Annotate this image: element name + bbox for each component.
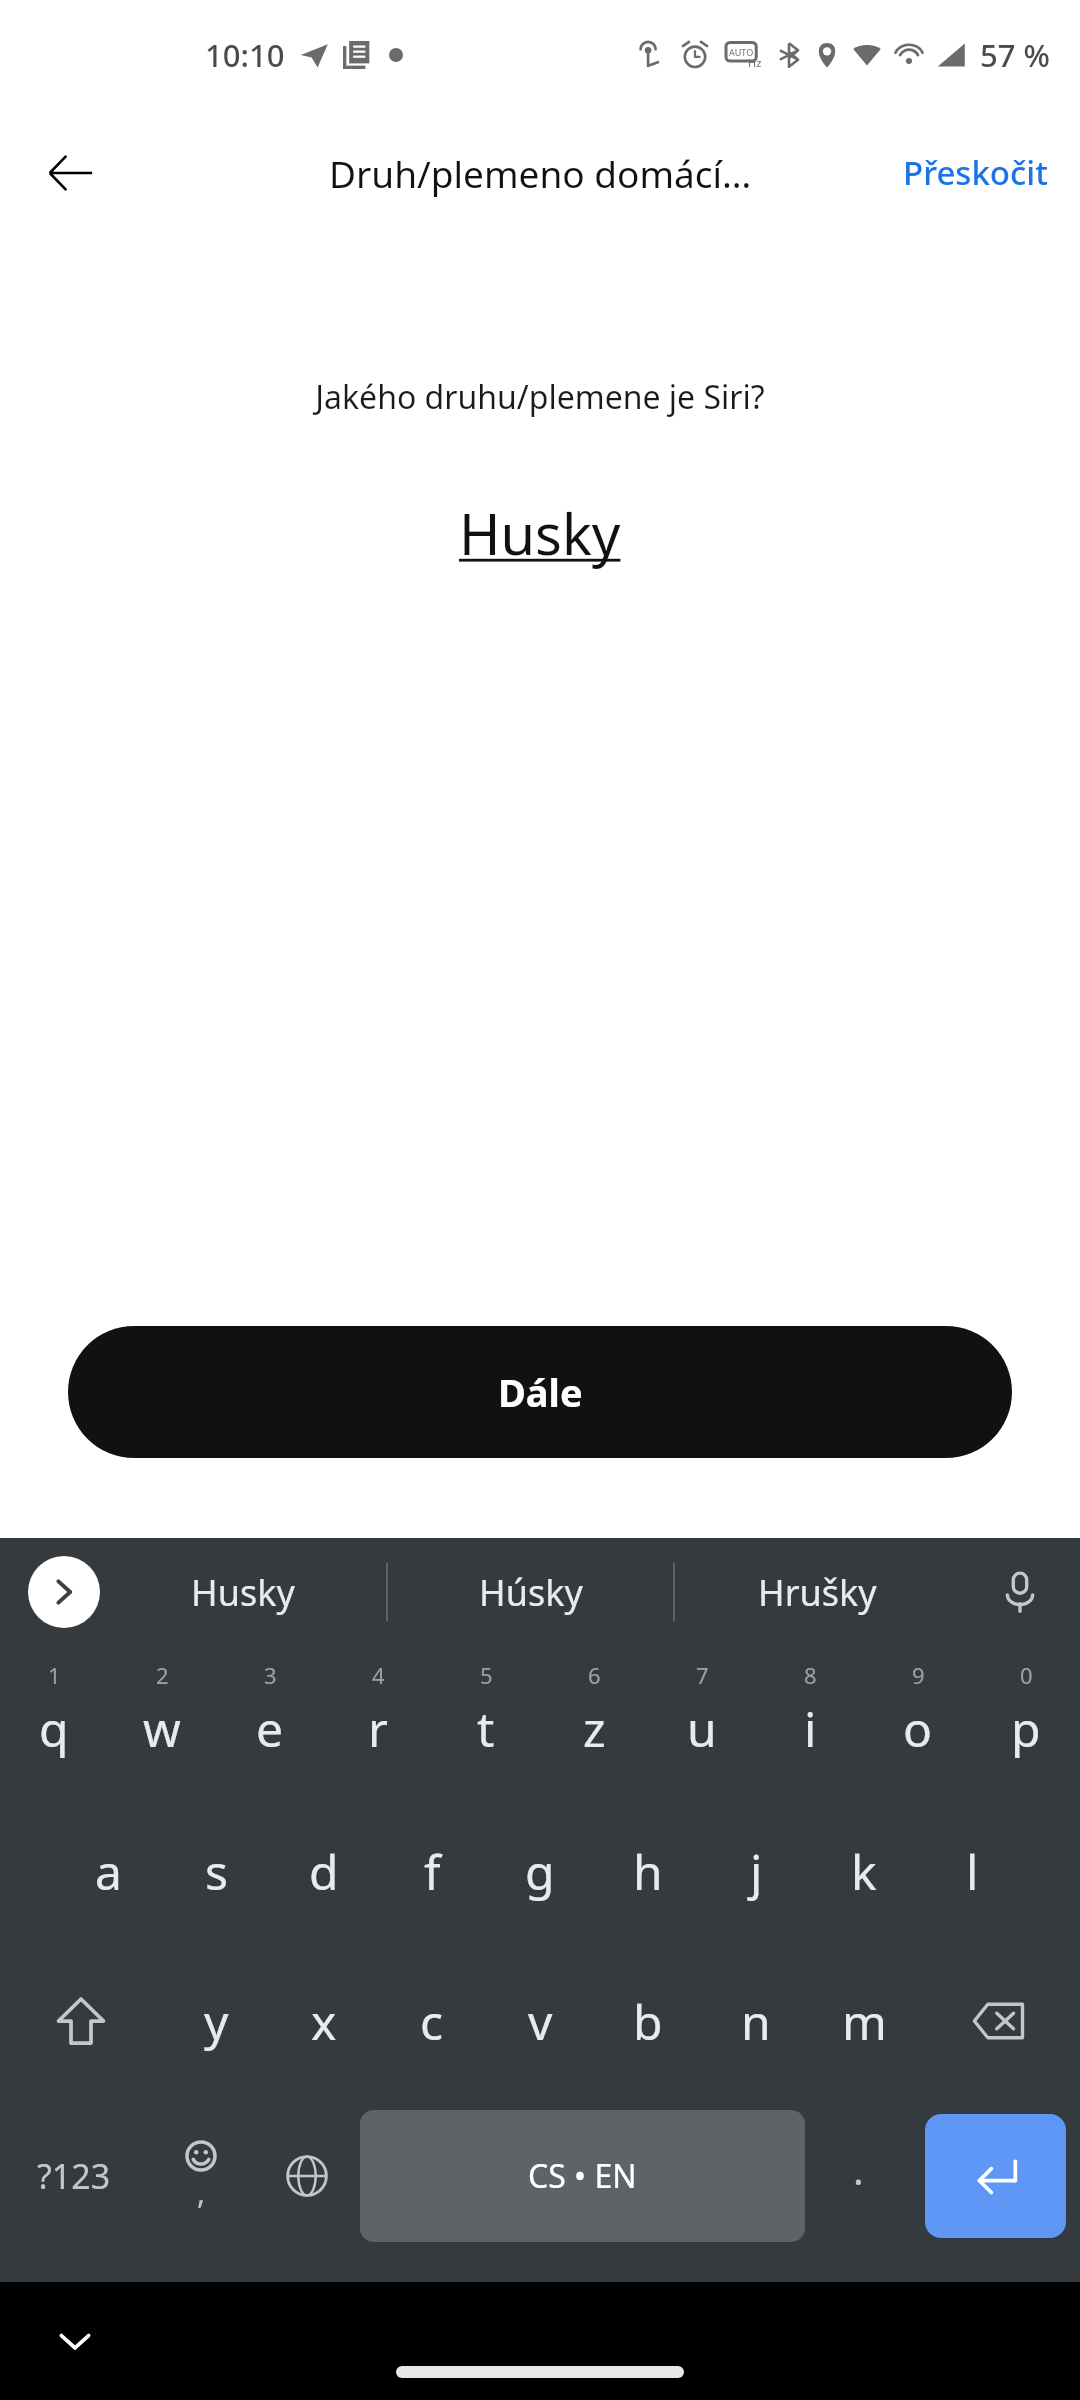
- staticText: 1: [48, 1660, 61, 1690]
- staticText: e: [256, 1696, 284, 1761]
- staticText: s: [205, 1839, 228, 1904]
- staticText: 57 %: [980, 34, 1050, 76]
- staticText: .: [853, 2142, 864, 2196]
- staticText: 5: [480, 1660, 493, 1690]
- staticText: Hz: [748, 55, 762, 70]
- button[interactable]: n: [702, 1946, 810, 2096]
- button[interactable]: Hrušky: [675, 1538, 960, 1646]
- button[interactable]: c: [378, 1946, 486, 2096]
- staticText: h: [633, 1839, 663, 1904]
- staticText: o: [903, 1696, 933, 1761]
- staticText: Dále: [498, 1366, 583, 1418]
- button[interactable]: j: [702, 1796, 810, 1946]
- button[interactable]: Husky: [100, 1538, 386, 1646]
- button[interactable]: Voice input: [960, 1538, 1080, 1646]
- button[interactable]: 9: [864, 1646, 972, 1796]
- button[interactable]: Enter: [925, 2114, 1066, 2238]
- button[interactable]: Shift: [0, 1946, 162, 2096]
- button[interactable]: Change keyboard language: [254, 2096, 360, 2256]
- button[interactable]: Husky: [439, 489, 641, 577]
- staticText: Jakého druhu/plemene je Siri?: [315, 375, 765, 419]
- staticText: g: [525, 1839, 555, 1904]
- staticText: a: [95, 1839, 122, 1904]
- button[interactable]: Húsky: [388, 1538, 673, 1646]
- button[interactable]: k: [810, 1796, 918, 1946]
- button[interactable]: h: [594, 1796, 702, 1946]
- staticText: 2: [156, 1660, 169, 1690]
- button[interactable]: 1: [0, 1646, 108, 1796]
- staticText: j: [750, 1839, 763, 1904]
- staticText: ?123: [37, 2153, 111, 2199]
- staticText: AUTO: [729, 46, 754, 58]
- staticText: v: [528, 1989, 553, 2054]
- staticText: 9: [912, 1660, 925, 1690]
- button[interactable]: Dále: [68, 1326, 1012, 1458]
- staticText: 4: [372, 1660, 385, 1690]
- button[interactable]: s: [162, 1796, 270, 1946]
- button[interactable]: a: [54, 1796, 162, 1946]
- staticText: Druh/plemeno domácí…: [329, 148, 752, 198]
- staticText: 6: [588, 1660, 601, 1690]
- staticText: m: [842, 1989, 887, 2054]
- staticText: t: [477, 1696, 495, 1761]
- button[interactable]: m: [810, 1946, 918, 2096]
- button[interactable]: 7: [648, 1646, 756, 1796]
- button[interactable]: Hide keyboard: [40, 2306, 110, 2376]
- button[interactable]: v: [486, 1946, 594, 2096]
- button[interactable]: 8: [756, 1646, 864, 1796]
- staticText: l: [966, 1839, 979, 1904]
- staticText: Přeskočit: [903, 150, 1048, 195]
- staticText: 10:10: [205, 34, 285, 76]
- staticText: CS • EN: [528, 2154, 637, 2198]
- staticText: d: [309, 1839, 339, 1904]
- staticText: ,: [197, 2172, 206, 2213]
- button[interactable]: y: [162, 1946, 270, 2096]
- staticText: n: [741, 1989, 771, 2054]
- staticText: k: [851, 1839, 877, 1904]
- button[interactable]: .: [805, 2096, 911, 2256]
- button[interactable]: ?123: [0, 2096, 148, 2256]
- button[interactable]: Back: [30, 133, 110, 213]
- button[interactable]: l: [918, 1796, 1026, 1946]
- button[interactable]: 6: [540, 1646, 648, 1796]
- staticText: u: [687, 1696, 717, 1761]
- button[interactable]: b: [594, 1946, 702, 2096]
- button[interactable]: Emoji: [148, 2096, 254, 2256]
- staticText: y: [204, 1989, 229, 2054]
- staticText: Húsky: [479, 1568, 583, 1617]
- button[interactable]: x: [270, 1946, 378, 2096]
- button[interactable]: d: [270, 1796, 378, 1946]
- button[interactable]: f: [378, 1796, 486, 1946]
- button[interactable]: Přeskočit: [887, 136, 1064, 209]
- staticText: r: [368, 1696, 388, 1761]
- button[interactable]: 0: [972, 1646, 1080, 1796]
- button[interactable]: 3: [216, 1646, 324, 1796]
- staticText: c: [420, 1989, 444, 2054]
- staticText: Hrušky: [758, 1568, 877, 1617]
- staticText: 0: [1020, 1660, 1033, 1690]
- staticText: z: [583, 1696, 606, 1761]
- staticText: b: [633, 1989, 663, 2054]
- button[interactable]: CS • EN: [360, 2110, 805, 2242]
- staticText: Husky: [191, 1568, 295, 1617]
- staticText: 7: [696, 1660, 709, 1690]
- staticText: q: [39, 1696, 69, 1761]
- button[interactable]: 4: [324, 1646, 432, 1796]
- staticText: f: [424, 1839, 441, 1904]
- staticText: w: [143, 1696, 181, 1761]
- button[interactable]: 5: [432, 1646, 540, 1796]
- staticText: i: [804, 1696, 817, 1761]
- staticText: Husky: [459, 495, 621, 571]
- staticText: 8: [804, 1660, 817, 1690]
- button[interactable]: Backspace: [918, 1946, 1080, 2096]
- button[interactable]: More suggestions: [28, 1556, 100, 1628]
- staticText: p: [1011, 1696, 1041, 1761]
- staticText: x: [311, 1989, 337, 2054]
- button[interactable]: 2: [108, 1646, 216, 1796]
- staticText: 3: [264, 1660, 277, 1690]
- button[interactable]: g: [486, 1796, 594, 1946]
